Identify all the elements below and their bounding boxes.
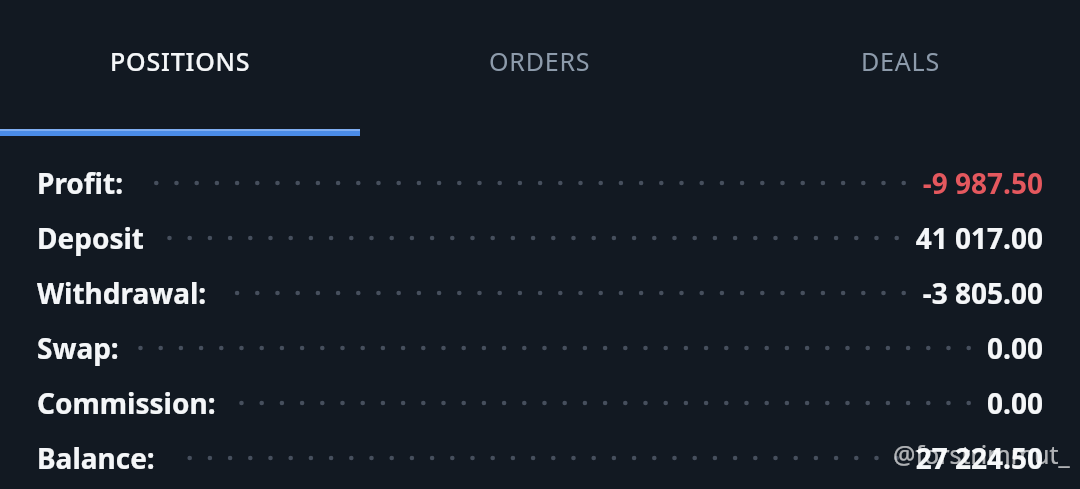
button[interactable]: Balance: — [0, 430, 1080, 485]
staticText: ORDERS — [489, 44, 591, 78]
button[interactable]: DEALS — [720, 0, 1080, 122]
button[interactable]: ORDERS — [360, 0, 720, 122]
staticText: Deposit — [37, 219, 144, 257]
button[interactable]: Commission: — [0, 375, 1080, 430]
button[interactable]: POSITIONS — [0, 0, 360, 122]
staticText: 27 224.50 — [915, 439, 1043, 477]
button[interactable]: Deposit — [0, 210, 1080, 265]
staticText: Profit: — [37, 164, 124, 202]
staticText: Balance: — [37, 439, 155, 477]
staticText: 41 017.00 — [915, 219, 1043, 257]
staticText: Swap: — [37, 329, 119, 367]
button[interactable]: Profit: — [0, 155, 1080, 210]
staticText: DEALS — [861, 44, 940, 78]
staticText: @forstrimmut_ — [893, 437, 1070, 471]
staticText: -9 987.50 — [922, 164, 1043, 202]
staticText: POSITIONS — [110, 44, 251, 78]
staticText: Commission: — [37, 384, 216, 422]
staticText: 0.00 — [987, 329, 1043, 367]
button[interactable]: Withdrawal: — [0, 265, 1080, 320]
staticText: 0.00 — [987, 384, 1043, 422]
staticText: -3 805.00 — [922, 274, 1043, 312]
staticText: Withdrawal: — [37, 274, 207, 312]
button[interactable]: Swap: — [0, 320, 1080, 375]
